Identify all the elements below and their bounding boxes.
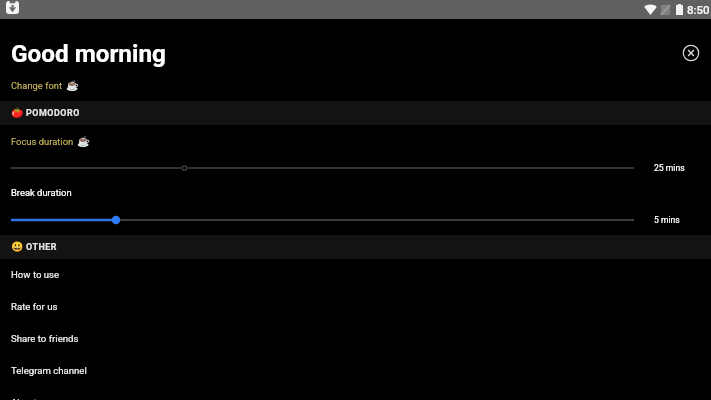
staticText: 25 mins: [654, 163, 685, 173]
staticText: About: [11, 397, 37, 400]
staticText: ☕: [77, 135, 91, 147]
staticText: 🍅: [11, 107, 24, 119]
button[interactable]: Rate for us: [0, 291, 711, 323]
button[interactable]: How to use: [0, 259, 711, 291]
button[interactable]: Share to friends: [0, 323, 711, 355]
staticText: POMODORO: [26, 108, 80, 118]
button[interactable]: Telegram channel: [0, 355, 711, 387]
staticText: Good morning: [11, 39, 166, 67]
button[interactable]: Focus duration: [0, 125, 711, 177]
staticText: Telegram channel: [11, 365, 87, 376]
staticText: 8:50: [687, 3, 710, 16]
button[interactable]: Change font: [11, 79, 80, 91]
button[interactable]: Close: [677, 39, 705, 67]
staticText: Rate for us: [11, 301, 58, 312]
staticText: Focus duration: [11, 136, 74, 147]
staticText: 5 mins: [654, 215, 680, 225]
staticText: ☕: [66, 79, 80, 91]
staticText: 😃: [11, 241, 24, 253]
button[interactable]: Break duration: [0, 177, 711, 229]
staticText: How to use: [11, 269, 60, 280]
staticText: Share to friends: [11, 333, 79, 344]
button[interactable]: About: [0, 387, 711, 400]
staticText: Change font: [11, 80, 63, 91]
staticText: Break duration: [11, 187, 72, 198]
staticText: OTHER: [26, 242, 58, 252]
